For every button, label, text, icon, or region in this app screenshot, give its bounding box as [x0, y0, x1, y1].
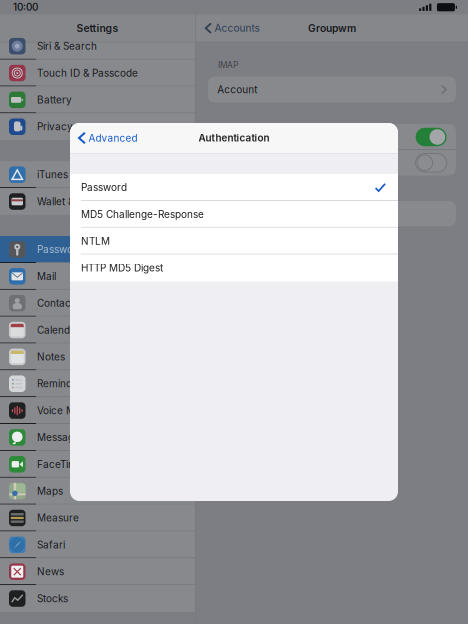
staticText: Password	[81, 181, 127, 193]
button[interactable]: Measure	[0, 505, 195, 531]
button[interactable]: Mail	[0, 263, 195, 290]
button[interactable]: Password	[70, 174, 398, 201]
button[interactable]: Battery	[0, 86, 195, 113]
button[interactable]: Stocks	[0, 585, 195, 612]
staticText: Accounts	[214, 22, 259, 34]
staticText: MD5 Challenge-Response	[81, 208, 204, 220]
button[interactable]: Calendar	[0, 317, 195, 343]
button[interactable]: Notes	[0, 343, 195, 370]
button[interactable]: Privacy	[0, 113, 195, 140]
staticText: Safari	[37, 539, 65, 551]
button[interactable]: Siri & Search	[0, 42, 195, 60]
staticText: Wallet & Apple Pay	[37, 195, 124, 208]
button[interactable]: Accounts	[196, 14, 259, 42]
staticText: HTTP MD5 Digest	[81, 262, 163, 274]
button[interactable]: Account	[208, 76, 456, 103]
button[interactable]: Messages	[0, 424, 195, 451]
staticText: Calendar	[37, 324, 80, 336]
staticText: News	[37, 566, 64, 578]
button[interactable]: HTTP MD5 Digest	[70, 254, 398, 281]
staticText: Voice Memos	[37, 404, 101, 417]
staticText: Passwords & Accounts	[37, 243, 145, 255]
button[interactable]: Touch ID & Passcode	[0, 60, 195, 86]
button[interactable]: MD5 Challenge-Response	[70, 201, 398, 228]
button[interactable]: NTLM	[70, 228, 398, 255]
staticText: Authentication	[198, 132, 269, 144]
staticText: Settings	[76, 22, 118, 34]
staticText: Maps	[37, 485, 63, 497]
button[interactable]: FaceTime	[0, 451, 195, 478]
staticText: IMAP	[218, 60, 238, 70]
staticText: 10:00	[13, 1, 38, 13]
staticText: Siri & Search	[37, 40, 97, 52]
staticText: Battery	[37, 94, 72, 106]
button[interactable]: Wallet & Apple Pay	[0, 188, 195, 215]
button[interactable]: iTunes & App Store	[0, 161, 195, 188]
button[interactable]: Safari	[0, 531, 195, 558]
staticText: Account	[217, 83, 257, 96]
button[interactable]: Advanced	[70, 123, 137, 153]
staticText: Notes	[37, 351, 65, 363]
button[interactable]: News	[0, 558, 195, 585]
staticText: NTLM	[81, 235, 110, 247]
staticText: Advanced	[88, 132, 137, 144]
staticText: FaceTime	[37, 458, 83, 470]
button[interactable]: Maps	[0, 478, 195, 505]
button[interactable]: Contacts	[0, 290, 195, 317]
staticText: Privacy	[37, 121, 73, 133]
staticText: Messages	[37, 431, 85, 443]
staticText: iTunes & App Store	[37, 169, 127, 181]
staticText: Stocks	[37, 592, 68, 605]
staticText: Measure	[37, 512, 79, 524]
staticText: Contacts	[37, 297, 79, 309]
button[interactable]: Passwords & Accounts	[0, 236, 195, 263]
staticText: Reminders	[37, 378, 87, 390]
staticText: Groupwm	[308, 22, 356, 34]
button[interactable]: Reminders	[0, 370, 195, 397]
staticText: Mail	[37, 270, 56, 282]
button[interactable]: Voice Memos	[0, 397, 195, 424]
staticText: Touch ID & Passcode	[37, 67, 138, 79]
